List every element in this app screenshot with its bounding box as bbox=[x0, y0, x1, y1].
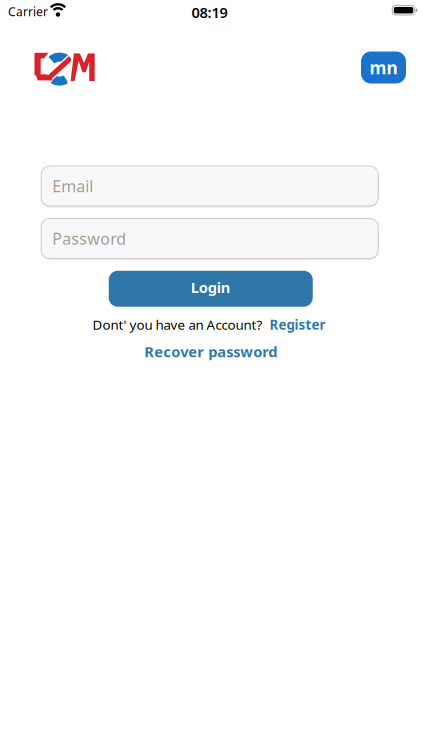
staticText: Email bbox=[52, 175, 93, 197]
staticText: Register bbox=[269, 316, 325, 333]
button[interactable]: Login bbox=[109, 271, 313, 307]
staticText: Carrier bbox=[8, 3, 48, 19]
staticText: Dont' you have an Account? bbox=[92, 316, 262, 333]
staticText: Recover password bbox=[144, 342, 277, 361]
staticText: mn bbox=[369, 56, 397, 79]
textField[interactable]: Email bbox=[52, 175, 378, 197]
button[interactable]: Recover password bbox=[144, 342, 277, 361]
staticText: Login bbox=[191, 277, 231, 297]
button[interactable]: Language bbox=[361, 51, 406, 83]
textField[interactable]: Password bbox=[52, 228, 378, 249]
button[interactable]: Register bbox=[269, 316, 325, 333]
staticText: Password bbox=[52, 228, 126, 249]
staticText: 08:19 bbox=[191, 2, 227, 22]
